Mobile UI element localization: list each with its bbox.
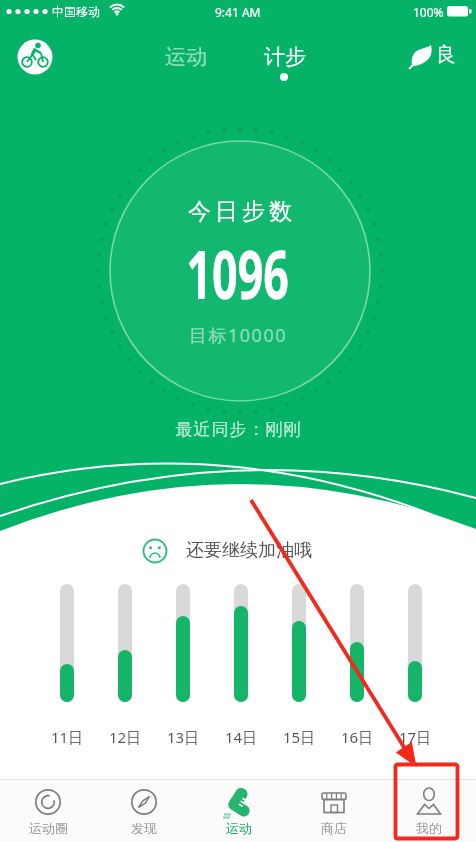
staticText: 运动圈: [29, 820, 68, 836]
button[interactable]: [17, 39, 53, 75]
staticText: 9:41 AM: [215, 4, 261, 20]
staticText: 13日: [167, 727, 200, 747]
staticText: 14日: [225, 727, 258, 747]
staticText: 发现: [131, 820, 157, 836]
staticText: 良: [436, 42, 456, 67]
button[interactable]: 发现: [96, 779, 191, 842]
staticText: 16日: [341, 727, 374, 747]
staticText: 目标10000: [189, 323, 287, 348]
staticText: 我的: [416, 820, 442, 836]
button[interactable]: 我的: [381, 779, 476, 842]
staticText: 11日: [51, 727, 84, 747]
staticText: 还要继续加油哦: [186, 539, 312, 562]
staticText: 运动: [226, 820, 252, 836]
staticText: 100%: [413, 4, 444, 20]
button[interactable]: 运动圈: [0, 779, 96, 842]
button[interactable]: 商店: [286, 779, 381, 842]
button[interactable]: 良: [408, 42, 468, 72]
staticText: 1096: [186, 228, 290, 318]
staticText: 中国移动: [52, 4, 100, 19]
staticText: 12日: [109, 727, 142, 747]
button[interactable]: 计步: [264, 44, 306, 70]
button[interactable]: 运动: [165, 44, 207, 70]
staticText: 17日: [399, 727, 432, 747]
staticText: 15日: [283, 727, 316, 747]
staticText: 商店: [321, 820, 347, 836]
staticText: 最近同步：刚刚: [175, 419, 301, 440]
button[interactable]: 运动: [191, 779, 286, 842]
staticText: 今日步数: [186, 197, 294, 226]
